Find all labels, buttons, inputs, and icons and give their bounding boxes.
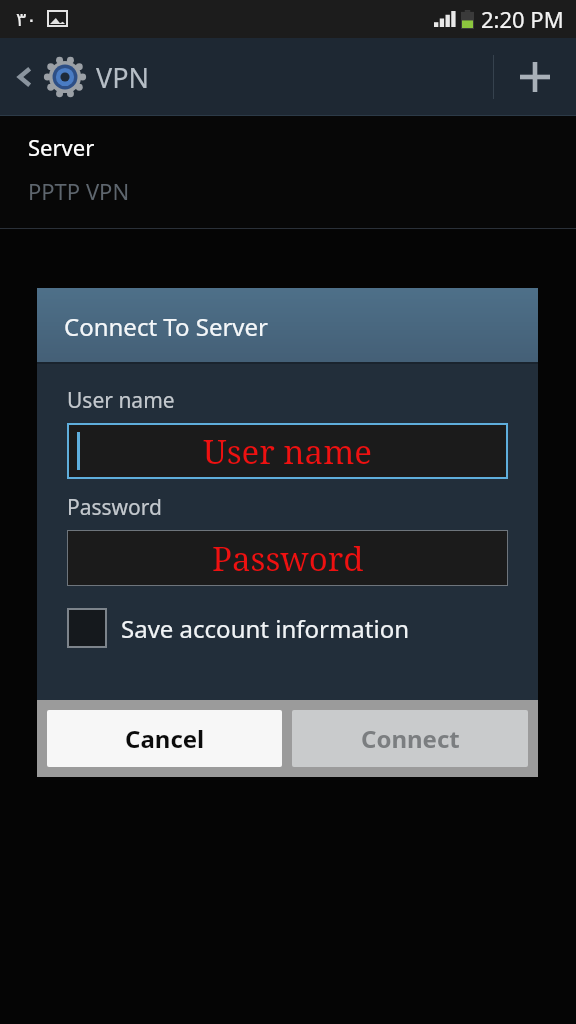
button[interactable]: Cancel: [47, 710, 282, 767]
button[interactable]: Connect: [292, 710, 528, 767]
staticText: VPN: [96, 59, 150, 96]
staticText: 2:20 PM: [481, 4, 564, 34]
staticText: Server: [28, 132, 95, 162]
button[interactable]: Server: [0, 116, 576, 228]
staticText: Password: [67, 493, 162, 522]
button[interactable]: Password: [67, 530, 508, 586]
button[interactable]: Back: [0, 38, 158, 116]
staticText: User name: [67, 386, 175, 415]
staticText: PPTP VPN: [28, 176, 130, 206]
staticText: Password: [212, 536, 364, 581]
other: Back: [12, 64, 38, 90]
staticText: ٣٠: [16, 8, 37, 30]
button[interactable]: User name: [67, 423, 508, 479]
staticText: Cancel: [125, 722, 205, 755]
staticText: User name: [203, 429, 373, 474]
staticText: Connect: [361, 722, 460, 755]
staticText: Connect To Server: [64, 310, 268, 343]
button[interactable]: Save account information: [67, 608, 410, 648]
button[interactable]: Add VPN profile: [494, 38, 576, 116]
staticText: Save account information: [121, 612, 410, 645]
